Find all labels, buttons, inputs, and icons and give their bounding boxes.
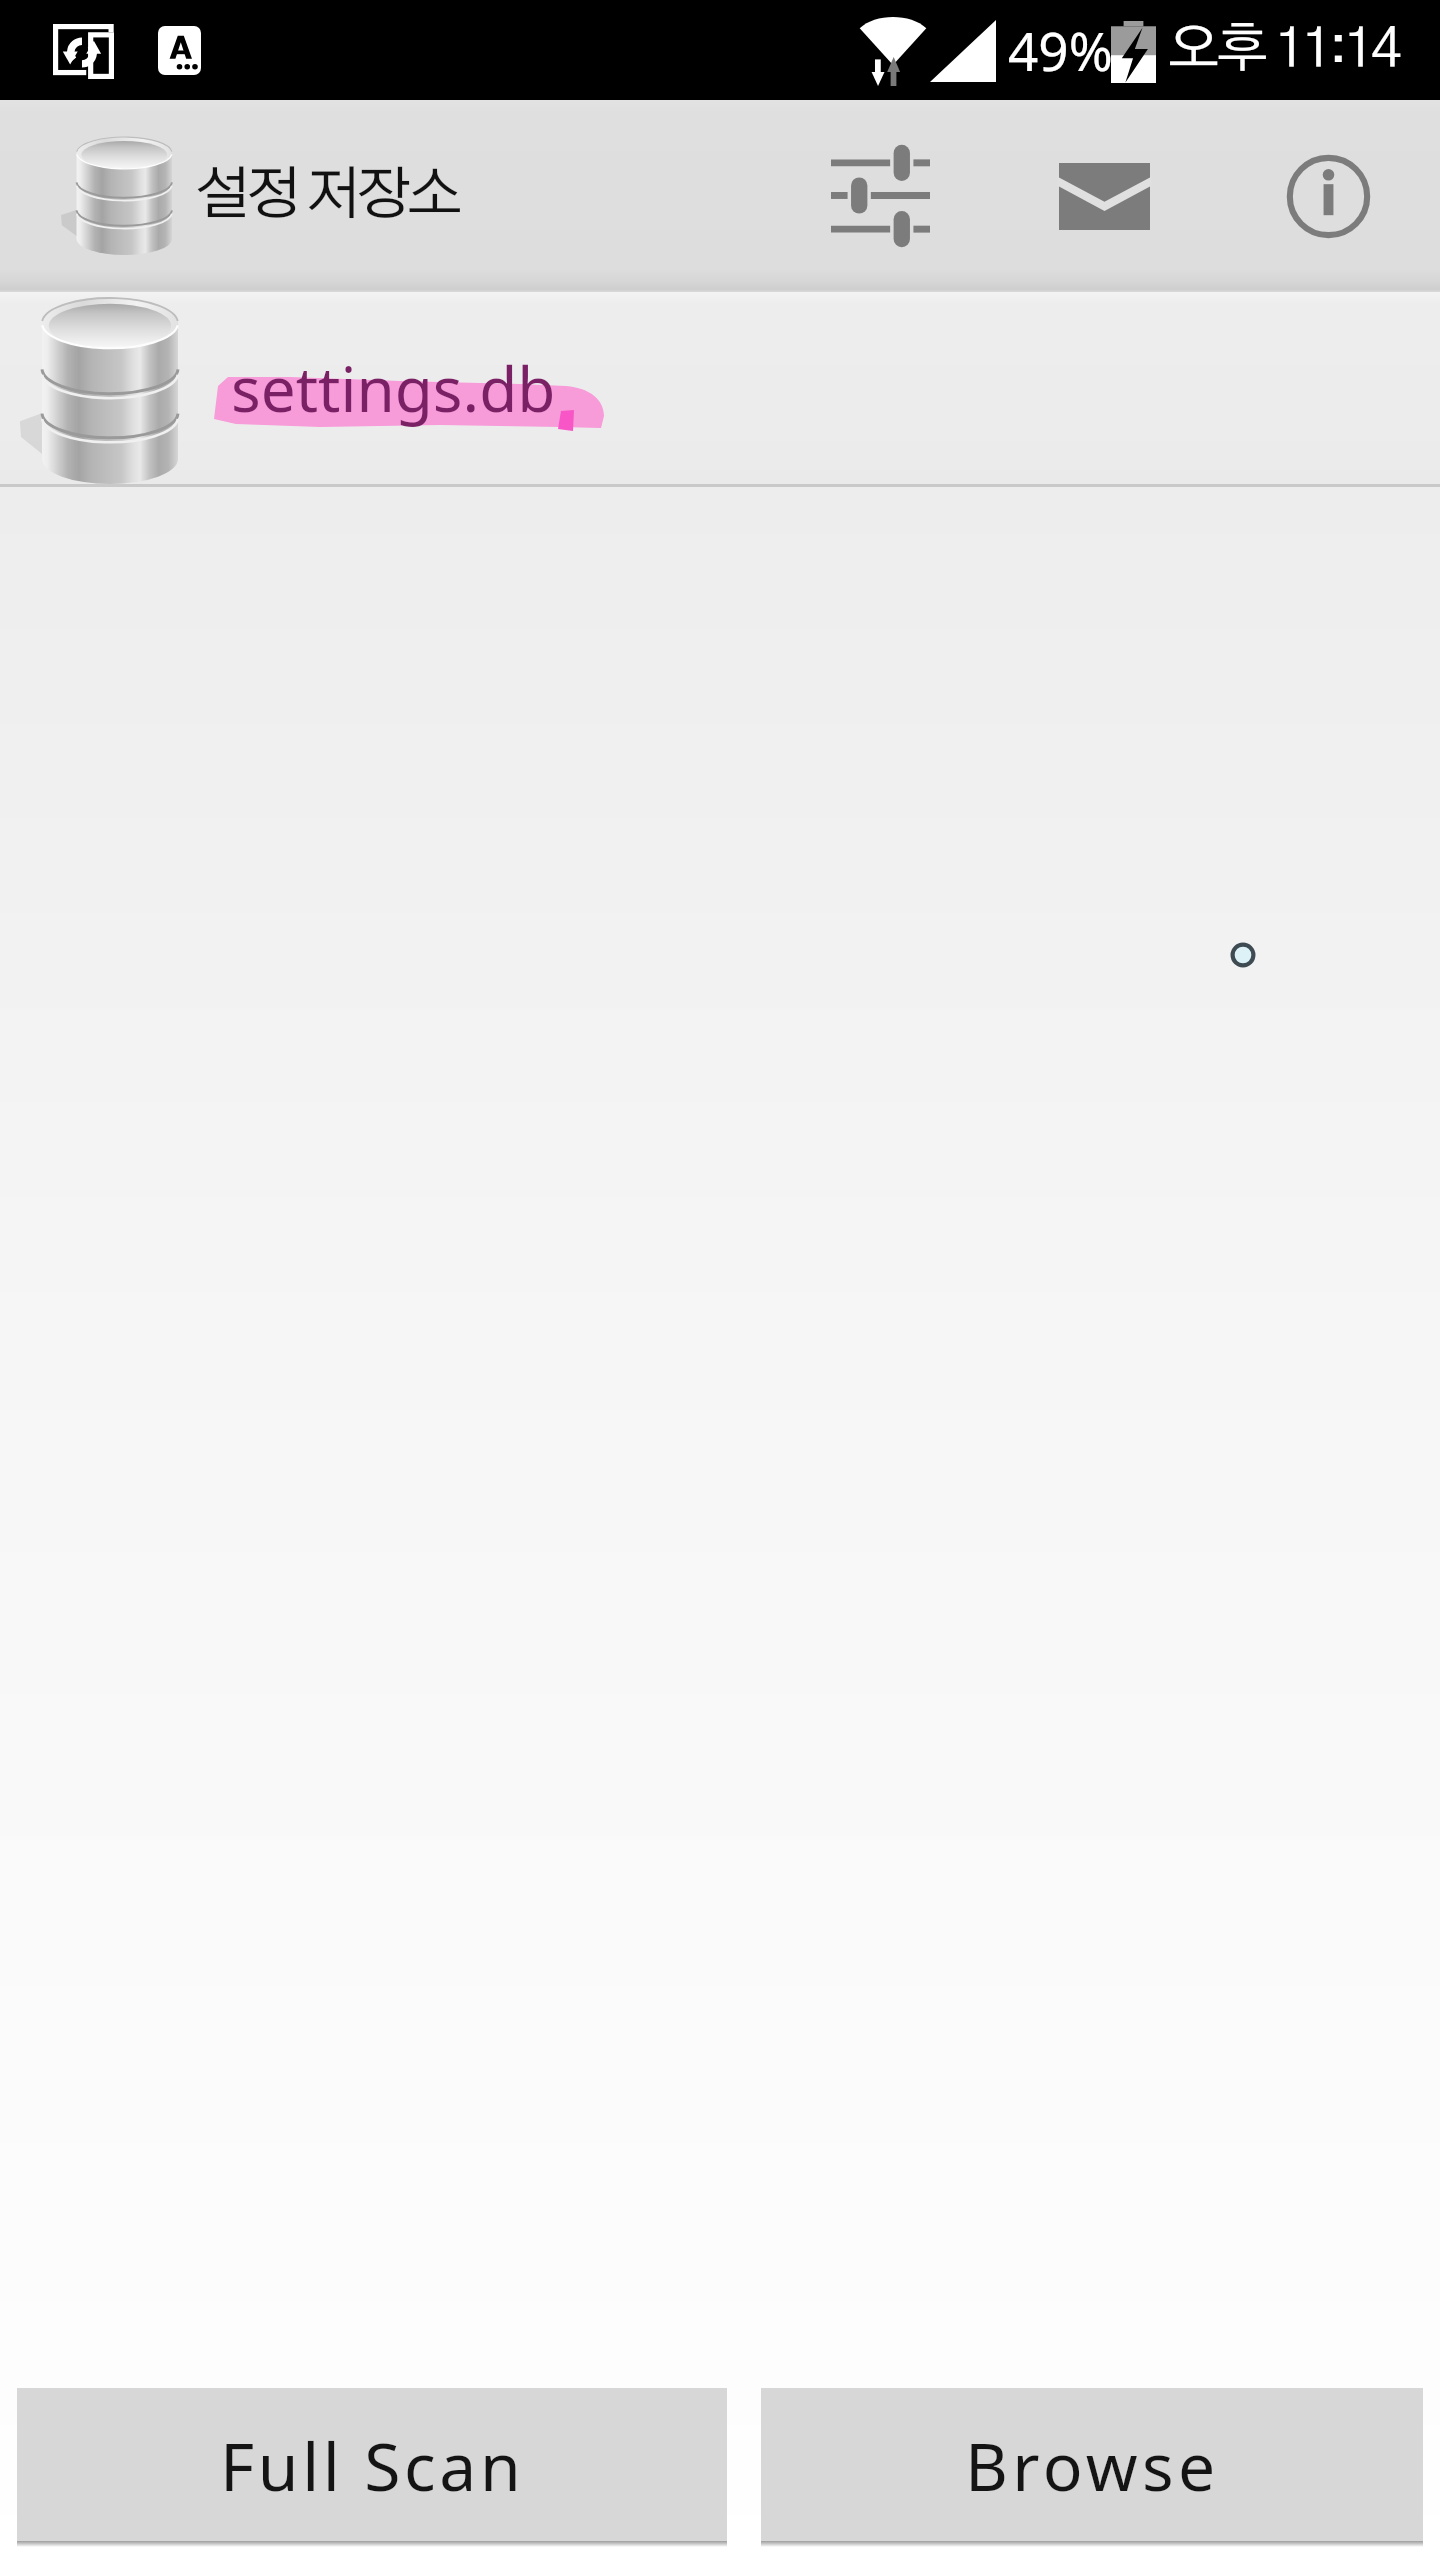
button[interactable]: Info (1216, 100, 1440, 292)
button[interactable]: settings.db (0, 292, 1440, 484)
button[interactable]: Mail (992, 100, 1216, 292)
button[interactable]: Browse (761, 2388, 1423, 2541)
staticText: 설정 저장소 (195, 167, 458, 225)
button[interactable]: Full Scan (17, 2388, 727, 2541)
button[interactable]: Settings (768, 100, 992, 292)
staticText: settings.db (231, 346, 556, 430)
staticText: 49% (1008, 14, 1113, 86)
staticText: Full Scan (220, 2420, 525, 2510)
staticText: 오후 11:14 (1168, 23, 1398, 77)
staticText: Browse (965, 2420, 1220, 2510)
